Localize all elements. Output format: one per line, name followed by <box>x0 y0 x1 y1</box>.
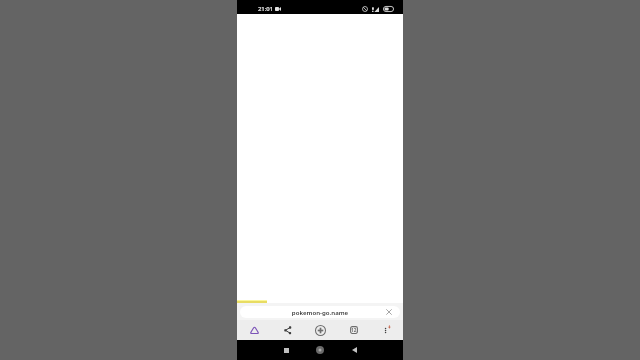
button[interactable]: Tabs <box>337 320 370 340</box>
button[interactable]: New tab <box>304 320 337 340</box>
button[interactable]: Home <box>237 320 271 340</box>
button[interactable]: More options <box>370 320 403 340</box>
button[interactable]: Clear <box>384 307 394 317</box>
button[interactable]: Recent apps <box>269 340 303 360</box>
button[interactable]: Home <box>303 340 337 360</box>
button[interactable]: Back <box>337 340 371 360</box>
button[interactable]: Share <box>271 320 304 340</box>
button[interactable]: pokemon-go.name <box>240 306 400 318</box>
staticText: 12 <box>351 327 357 333</box>
staticText: pokemon-go.name <box>240 308 400 316</box>
staticText: 21:01 <box>258 5 274 13</box>
